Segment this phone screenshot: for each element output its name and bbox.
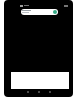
button[interactable] <box>21 9 58 15</box>
